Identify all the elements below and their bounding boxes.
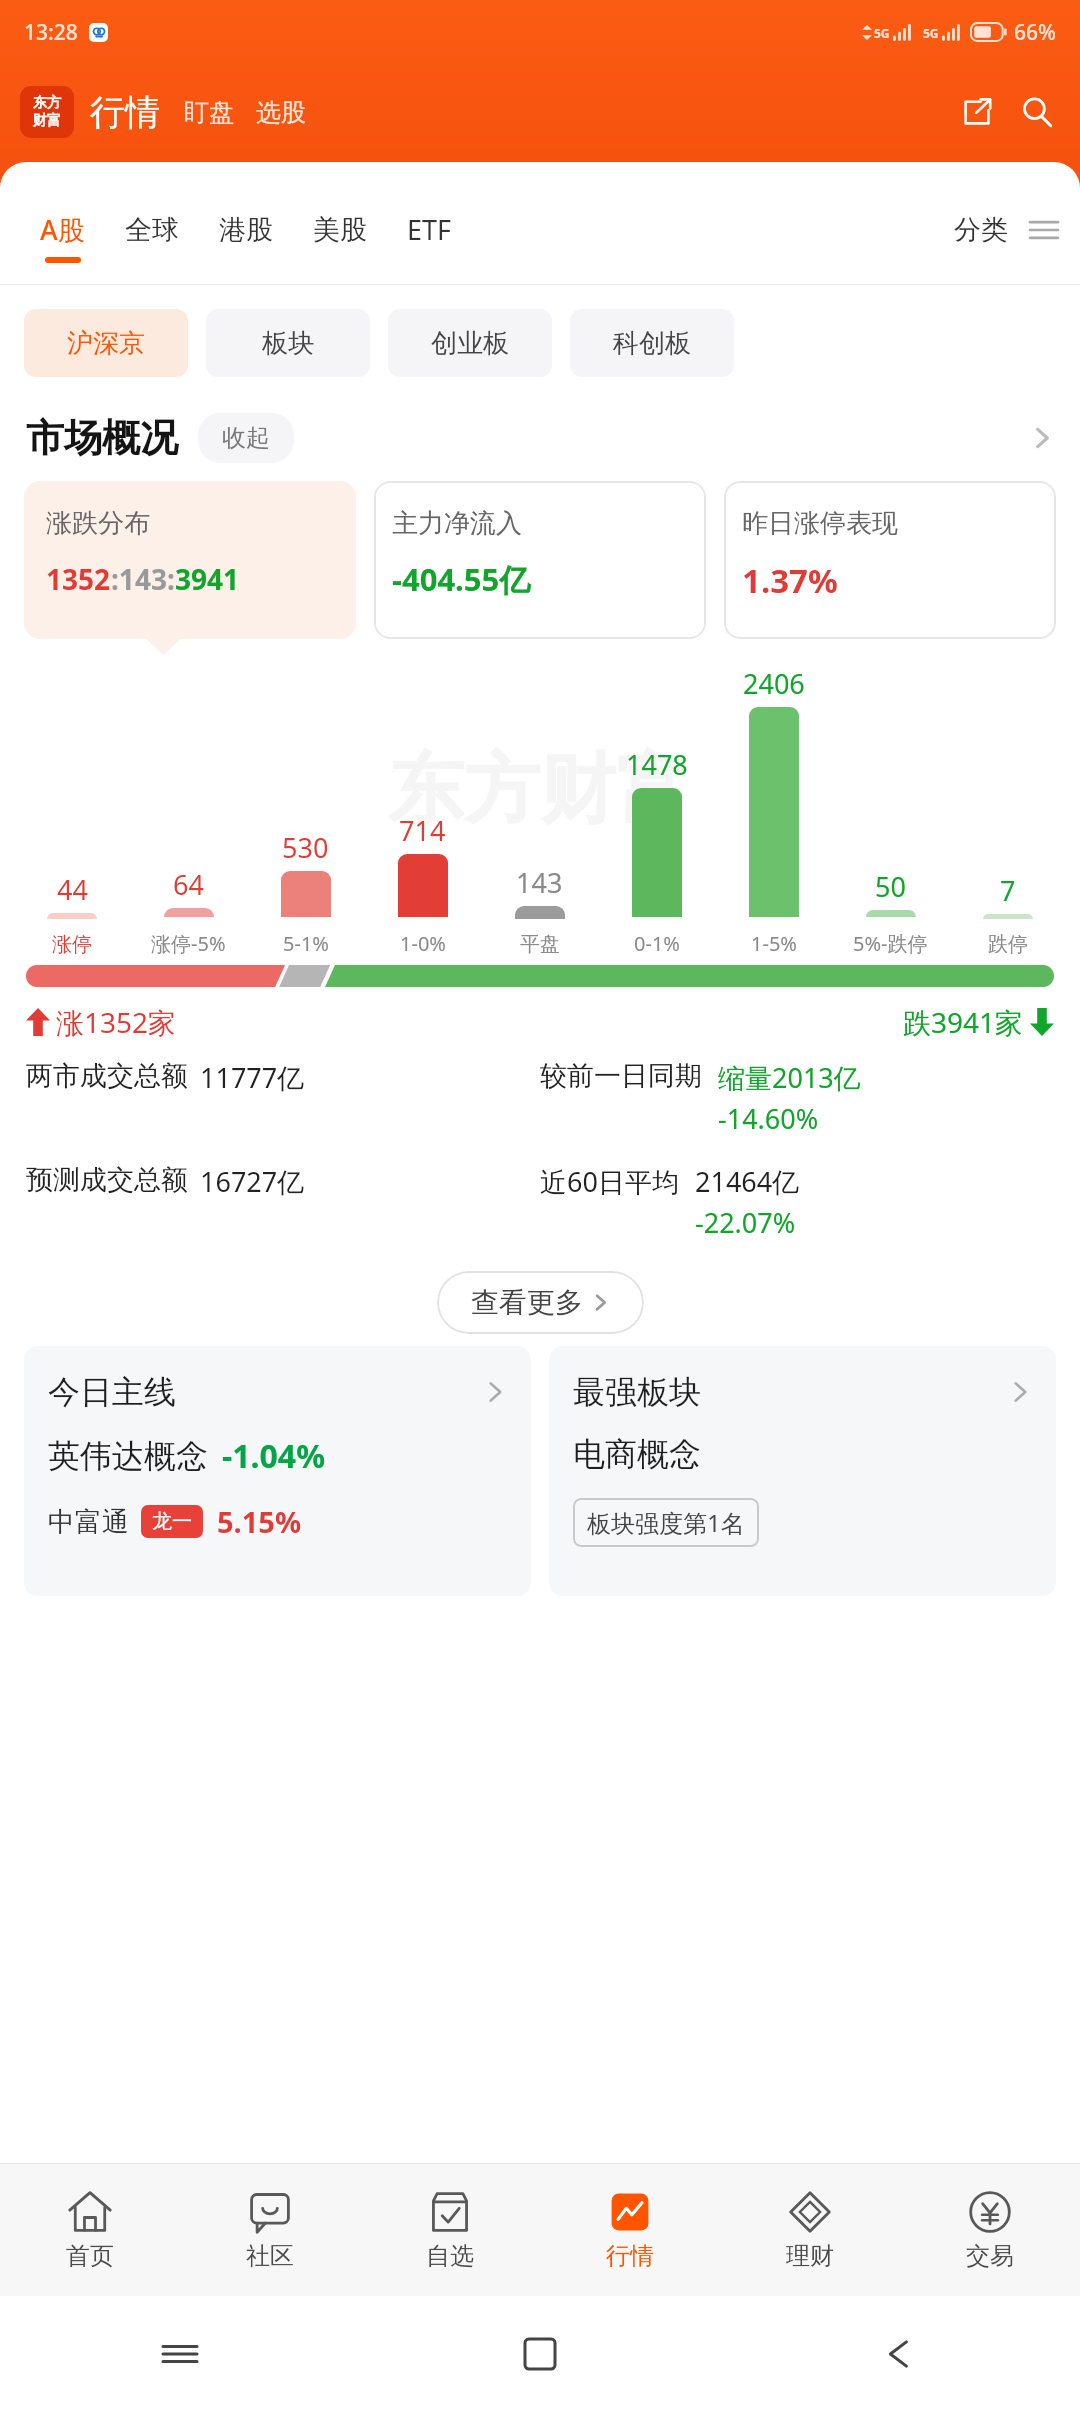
button[interactable]: 创业板 [388, 309, 552, 377]
button[interactable]: 最强板块 [549, 1346, 1056, 1596]
staticText: 1-5% [751, 930, 797, 957]
staticText: 2406 [743, 665, 805, 702]
staticText: 11777亿 [200, 1059, 305, 1096]
staticText: 50 [875, 868, 906, 905]
button[interactable]: 自选 [360, 2164, 540, 2296]
staticText: 东方财富 [388, 742, 692, 838]
button[interactable]: 板块 [206, 309, 370, 377]
button[interactable]: 社区 [180, 2164, 360, 2296]
staticText: 港股 [219, 213, 273, 247]
button[interactable]: 全球 [111, 213, 193, 262]
staticText: 沪深京 [67, 327, 145, 360]
staticText: 英伟达概念 [48, 1436, 208, 1476]
staticText: 中富通 [48, 1505, 129, 1539]
button[interactable]: 交易 [900, 2164, 1080, 2296]
staticText: 涨跌分布 [46, 507, 150, 540]
staticText: 0-1% [634, 930, 680, 957]
button[interactable]: 行情 [540, 2164, 720, 2296]
staticText: 美股 [313, 213, 367, 247]
staticText: 理财 [786, 2241, 834, 2271]
staticText: 预测成交总额 [26, 1163, 188, 1197]
staticText: 东方 [33, 94, 61, 112]
staticText: 社区 [246, 2241, 294, 2271]
staticText: 涨停-5% [151, 930, 226, 957]
staticText: 自选 [426, 2241, 474, 2271]
button[interactable]: 涨跌分布 [24, 481, 356, 639]
button[interactable]: Home [360, 2296, 720, 2412]
button[interactable]: 东方 [20, 86, 74, 138]
staticText: 1478 [626, 746, 688, 783]
button[interactable]: 收起 [198, 413, 294, 463]
staticText: 44 [57, 871, 88, 908]
staticText: 缩量2013亿 [718, 1059, 861, 1096]
button[interactable]: ETF [393, 211, 466, 263]
staticText: :143: [111, 560, 175, 598]
staticText: 5-1% [283, 930, 329, 957]
staticText: 两市成交总额 [26, 1059, 188, 1093]
staticText: 龙一 [152, 1509, 192, 1534]
staticText: 主力净流入 [392, 507, 522, 540]
staticText: 13:28 [24, 18, 78, 47]
button[interactable]: 沪深京 [24, 309, 188, 377]
staticText: 科创板 [613, 327, 691, 360]
staticText: 近60日平均 [540, 1163, 679, 1200]
staticText: 交易 [966, 2241, 1014, 2271]
button[interactable]: 主力净流入 [374, 481, 706, 639]
staticText: 昨日涨停表现 [742, 507, 898, 540]
button[interactable]: 理财 [720, 2164, 900, 2296]
staticText: 创业板 [431, 327, 509, 360]
button[interactable]: Menu [1020, 213, 1068, 247]
button[interactable]: 查看更多 [437, 1271, 644, 1334]
button[interactable]: 今日主线 [24, 1346, 531, 1596]
staticText: 66% [1014, 18, 1056, 47]
staticText: -404.55亿 [392, 558, 531, 600]
staticText: -1.04% [222, 1434, 326, 1478]
button[interactable]: A股 [26, 211, 99, 263]
staticText: 全球 [125, 213, 179, 247]
button[interactable]: 科创板 [570, 309, 734, 377]
staticText: 跌停 [988, 932, 1028, 957]
staticText: 530 [282, 829, 329, 866]
button[interactable]: 市场概况 [0, 395, 1080, 481]
staticText: -22.07% [695, 1204, 796, 1241]
staticText: 5%-跌停 [853, 930, 928, 957]
button[interactable]: 盯盘 [184, 97, 234, 128]
staticText: 平盘 [520, 932, 560, 957]
staticText: 今日主线 [48, 1372, 176, 1412]
button[interactable]: 选股 [256, 97, 306, 128]
staticText: 最强板块 [573, 1372, 701, 1412]
staticText: 7 [1000, 872, 1016, 909]
button[interactable]: Back [720, 2296, 1080, 2412]
staticText: 分类 [954, 213, 1008, 247]
staticText: 1.37% [742, 558, 838, 603]
button[interactable]: Share [954, 89, 1000, 135]
staticText: ETF [407, 211, 452, 248]
staticText: 21464亿 [695, 1163, 800, 1200]
staticText: 市场概况 [26, 414, 178, 462]
staticText: 5.15% [217, 1502, 302, 1541]
staticText: 较前一日同期 [540, 1059, 702, 1093]
staticText: 电商概念 [573, 1434, 701, 1474]
button[interactable]: Recents [0, 2296, 360, 2412]
staticText: 5G [874, 25, 890, 41]
staticText: 1-0% [400, 930, 446, 957]
staticText: 首页 [66, 2241, 114, 2271]
staticText: 64 [173, 866, 204, 903]
staticText: 1352 [46, 560, 111, 598]
staticText: 143 [516, 864, 563, 901]
staticText: 收起 [222, 423, 270, 453]
button[interactable]: Search [1014, 89, 1060, 135]
staticText: 行情 [606, 2241, 654, 2271]
staticText: 查看更多 [471, 1285, 583, 1320]
button[interactable]: 美股 [299, 213, 381, 262]
staticText: 714 [399, 812, 446, 849]
staticText: 板块 [262, 327, 314, 360]
staticText: A股 [40, 211, 85, 248]
button[interactable]: 港股 [205, 213, 287, 262]
staticText: 16727亿 [200, 1163, 305, 1200]
button[interactable]: 昨日涨停表现 [724, 481, 1056, 639]
button[interactable]: 首页 [0, 2164, 180, 2296]
button[interactable]: 分类 [954, 213, 1020, 261]
button[interactable]: 行情 [90, 90, 160, 134]
staticText: 3941 [175, 560, 240, 598]
